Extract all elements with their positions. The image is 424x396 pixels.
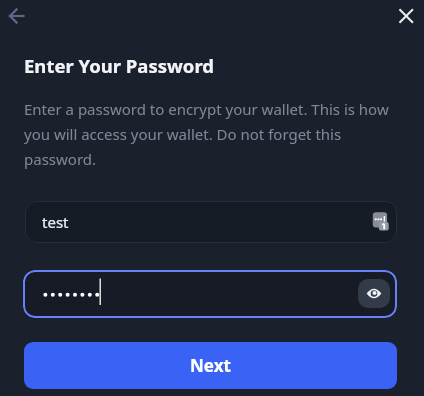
staticText: Enter Your Password (24, 53, 214, 78)
button[interactable] (358, 279, 390, 308)
button[interactable]: Next (24, 342, 397, 389)
button[interactable] (23, 270, 397, 318)
staticText: Enter a password to encrypt your wallet.… (24, 99, 402, 169)
staticText: test (42, 212, 69, 232)
button[interactable] (390, 0, 424, 34)
button[interactable] (0, 0, 36, 34)
staticText: Next (190, 354, 231, 377)
button[interactable]: test (25, 201, 397, 243)
